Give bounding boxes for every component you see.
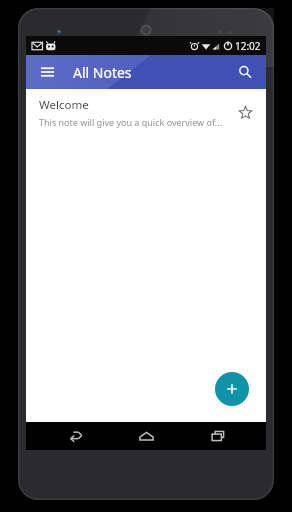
button[interactable]: Recent apps [195,422,241,450]
button[interactable]: Welcome [26,89,266,135]
button[interactable]: Home [123,422,169,450]
button[interactable]: Favorite [232,99,258,125]
staticText: 12:02 [235,39,261,53]
staticText: Welcome [39,97,89,113]
button[interactable]: Search [232,59,258,85]
button[interactable]: Open navigation drawer [34,59,60,85]
button[interactable]: Back [52,422,98,450]
staticText: All Notes [73,63,132,82]
staticText: This note will give you a quick overview… [39,116,223,128]
button[interactable]: Add note [215,372,249,406]
